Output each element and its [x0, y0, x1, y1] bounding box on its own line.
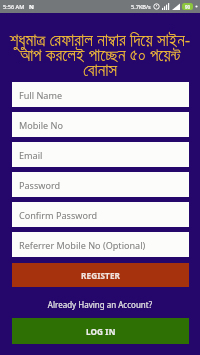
- other: Battery: [182, 3, 193, 10]
- staticText: Email: [19, 149, 43, 161]
- other: Alarm: [153, 3, 160, 10]
- staticText: Confirm Password: [19, 209, 98, 221]
- staticText: 90: [185, 4, 191, 10]
- staticText: 5.7KB/s: [131, 3, 151, 11]
- button[interactable]: Mobile No: [12, 112, 189, 137]
- staticText: REGISTER: [81, 270, 121, 281]
- button[interactable]: Password: [12, 172, 189, 197]
- staticText: LOG IN: [86, 326, 116, 337]
- button[interactable]: Email: [12, 142, 189, 167]
- button[interactable]: REGISTER: [12, 263, 189, 287]
- staticText: শুধুমাত্র রেফারাল নাম্বার দিয়ে সাইন- আপ…: [0, 28, 200, 79]
- button[interactable]: Referrer Mobile No (Optional): [12, 232, 189, 257]
- staticText: Password: [19, 179, 61, 191]
- button[interactable]: LOG IN: [12, 318, 189, 344]
- button[interactable]: Full Name: [12, 82, 189, 107]
- staticText: Already Having an Account?: [0, 299, 200, 310]
- staticText: Referrer Mobile No (Optional): [19, 239, 146, 251]
- staticText: 5:56 AM: [3, 3, 25, 11]
- staticText: Full Name: [19, 89, 63, 101]
- other: Signal: [162, 3, 170, 10]
- other: Signal 2: [172, 3, 180, 10]
- staticText: N: [29, 3, 34, 11]
- staticText: Mobile No: [19, 119, 63, 131]
- button[interactable]: Confirm Password: [12, 202, 189, 227]
